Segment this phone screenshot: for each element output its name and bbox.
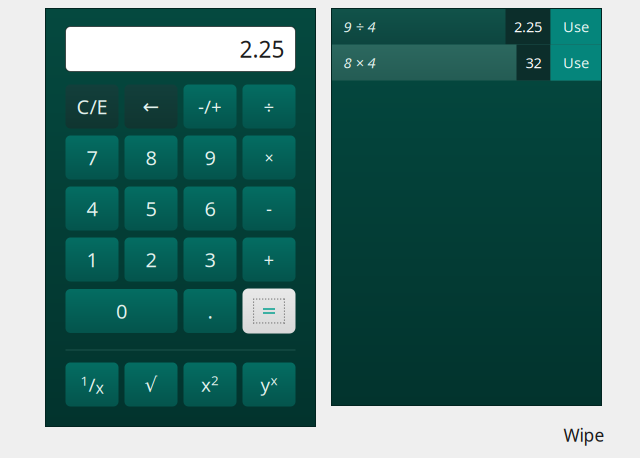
staticText: C/E [76,93,107,120]
button[interactable]: Minus [242,186,295,230]
button[interactable]: 1 [65,237,118,281]
button[interactable]: 7 [65,135,118,179]
staticText: x [201,372,211,397]
staticText: x [95,377,103,398]
staticText: 2 [211,371,219,389]
staticText: 9 [204,144,215,171]
staticText: 6 [204,195,215,222]
button[interactable]: 8 [124,135,177,179]
staticText: -/+ [198,94,222,119]
button[interactable]: y to the power of x [242,362,295,406]
staticText: 2 [145,246,156,273]
button[interactable]: Multiply [242,135,295,179]
button[interactable]: 9 [183,135,236,179]
button[interactable]: Decimal point [183,289,236,333]
staticText: Use [563,53,589,72]
staticText: 1 [86,246,97,273]
button[interactable]: Use [550,8,601,44]
staticText: 4 [86,195,97,222]
button[interactable]: 3 [183,237,236,281]
staticText: 5 [145,195,156,222]
staticText: 0 [116,298,127,324]
button[interactable]: Clear entry [65,84,118,128]
button[interactable]: 2 [124,237,177,281]
staticText: √ [144,373,157,396]
button[interactable]: Plus [242,237,295,281]
staticText: / [88,372,95,397]
button[interactable]: x to the power of 2 [183,362,236,406]
staticText: + [263,247,274,272]
staticText: 8 × 4 [343,53,375,72]
button[interactable]: Plus minus [183,84,236,128]
staticText: y [260,372,270,397]
staticText: 7 [86,144,97,171]
button[interactable]: Wipe [563,423,604,446]
button[interactable]: 4 [65,186,118,230]
staticText: 1 [80,372,88,389]
button[interactable]: Divide [242,84,295,128]
staticText: Use [563,17,589,36]
button[interactable]: Use [550,44,601,80]
staticText: 9 ÷ 4 [343,17,375,36]
button[interactable]: 0 [65,289,177,333]
staticText: . [207,298,212,324]
button[interactable]: Reciprocal [65,362,118,406]
button[interactable]: Backspace [124,84,177,128]
staticText: ÷ [263,94,274,119]
button[interactable]: Square root [124,362,177,406]
staticText: × [264,147,273,168]
staticText: - [266,196,272,221]
button[interactable]: 5 [124,186,177,230]
button[interactable]: Equals [242,288,295,333]
staticText: Wipe [563,423,604,446]
button[interactable]: 6 [183,186,236,230]
staticText: ← [142,95,159,118]
staticText: 32 [525,53,541,72]
staticText: 2.25 [239,34,284,64]
staticText: 3 [204,246,215,273]
staticText: 8 [145,144,156,171]
staticText: 2.25 [514,17,542,36]
staticText: x [270,371,277,389]
